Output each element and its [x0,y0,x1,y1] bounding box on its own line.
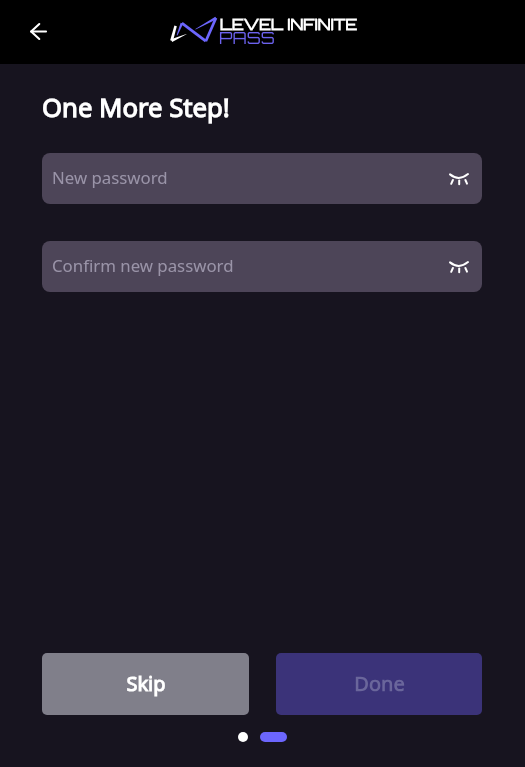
staticText: Skip [126,670,166,697]
staticText: One More Step! [42,90,230,125]
staticText: LEVEL INFINITE [220,14,358,33]
staticText: Done [354,670,405,697]
button[interactable]: New password [42,153,482,204]
button[interactable]: Skip [42,653,249,715]
staticText: New password [52,166,168,189]
button[interactable]: Back [18,11,58,51]
button[interactable]: Confirm new password [42,241,482,292]
button[interactable]: Show password [446,166,472,192]
button[interactable]: Done [276,653,482,715]
button[interactable]: Show password [446,254,472,280]
staticText: PASS [219,27,275,48]
staticText: Confirm new password [52,254,234,277]
